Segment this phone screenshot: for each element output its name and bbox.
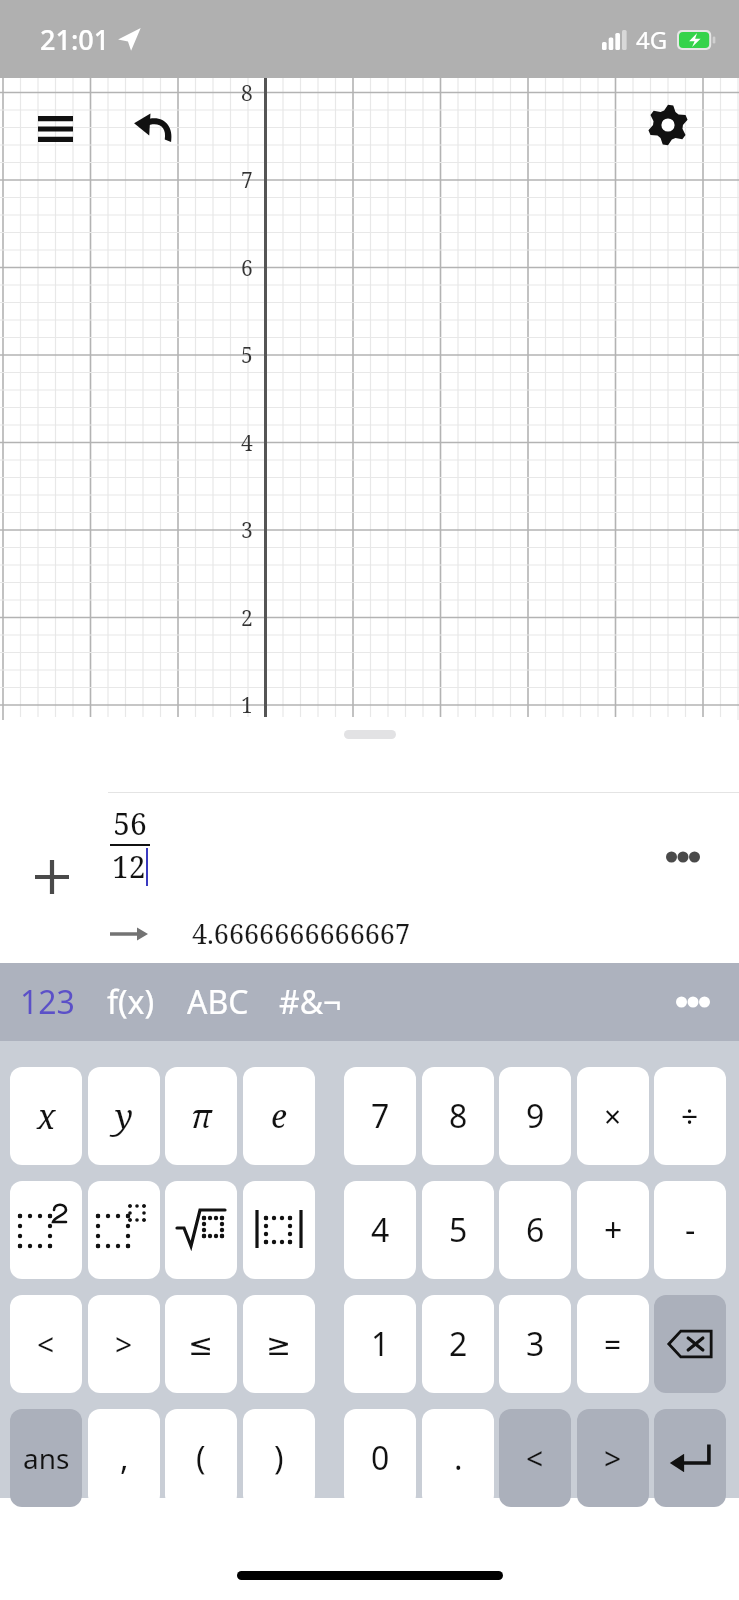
button[interactable]: 1	[344, 1295, 416, 1393]
staticText: 4G	[636, 23, 668, 56]
staticText: 3	[241, 516, 253, 545]
staticText: x	[37, 1093, 56, 1139]
staticText: ,	[120, 1436, 129, 1480]
button[interactable]: <	[10, 1295, 82, 1393]
button[interactable]: Menu	[24, 98, 86, 160]
button[interactable]: Square root	[165, 1181, 237, 1279]
button[interactable]: Settings	[637, 94, 699, 156]
staticText: 8	[449, 1094, 468, 1138]
staticText: 5	[241, 341, 253, 370]
staticText: <	[526, 1438, 544, 1479]
staticText: (	[196, 1436, 206, 1480]
button[interactable]: >	[88, 1295, 160, 1393]
staticText: .	[454, 1436, 463, 1480]
button[interactable]: ABC	[181, 963, 255, 1041]
staticText: 4.6666666666667	[192, 915, 411, 952]
button[interactable]: ×	[577, 1067, 649, 1165]
staticText: 6	[241, 254, 253, 283]
button[interactable]: ≤	[165, 1295, 237, 1393]
button[interactable]: =	[577, 1295, 649, 1393]
staticText: <	[37, 1324, 55, 1365]
button[interactable]: Power	[88, 1181, 160, 1279]
staticText: ×	[604, 1096, 622, 1137]
button[interactable]: More keyboard options	[665, 974, 721, 1030]
staticText: 4	[371, 1208, 390, 1252]
staticText: ≤	[188, 1327, 214, 1362]
button[interactable]: Expression options	[655, 829, 711, 885]
staticText: )	[274, 1436, 284, 1480]
button[interactable]: 9	[499, 1067, 571, 1165]
button[interactable]: 5	[422, 1181, 494, 1279]
button[interactable]: Square	[10, 1181, 82, 1279]
staticText: 7	[371, 1094, 390, 1138]
staticText: 6	[526, 1208, 545, 1252]
staticText: 5	[449, 1208, 468, 1252]
button[interactable]: π	[165, 1067, 237, 1165]
button[interactable]: 2	[422, 1295, 494, 1393]
staticText: 9	[526, 1094, 545, 1138]
staticText: #&¬	[279, 980, 342, 1024]
staticText: y	[115, 1093, 133, 1139]
button[interactable]: Add expression	[22, 847, 82, 907]
button[interactable]: ≥	[243, 1295, 315, 1393]
button[interactable]: 7	[344, 1067, 416, 1165]
staticText: 123	[20, 980, 75, 1024]
button[interactable]: 6	[499, 1181, 571, 1279]
button[interactable]: 4	[344, 1181, 416, 1279]
staticText: >	[115, 1324, 133, 1365]
button[interactable]: ans	[10, 1409, 82, 1507]
staticText: 3	[526, 1322, 545, 1366]
staticText: 4	[241, 429, 253, 458]
staticText: π	[191, 1094, 212, 1138]
staticText: 7	[241, 166, 253, 195]
staticText: ÷	[681, 1096, 699, 1137]
staticText: =	[604, 1324, 622, 1365]
staticText: f(x)	[107, 980, 155, 1024]
staticText: 0	[371, 1436, 390, 1480]
button[interactable]: f(x)	[101, 963, 161, 1041]
button[interactable]: e	[243, 1067, 315, 1165]
button[interactable]: 3	[499, 1295, 571, 1393]
button[interactable]: ÷	[654, 1067, 726, 1165]
button[interactable]: 123	[14, 963, 81, 1041]
button[interactable]: 8	[422, 1067, 494, 1165]
button[interactable]: Enter	[654, 1409, 726, 1507]
button[interactable]: 56	[110, 803, 150, 887]
button[interactable]: +	[577, 1181, 649, 1279]
button[interactable]: y	[88, 1067, 160, 1165]
button[interactable]: #&¬	[273, 963, 348, 1041]
button[interactable]: )	[243, 1409, 315, 1507]
staticText: -	[685, 1208, 696, 1252]
button[interactable]: Backspace	[654, 1295, 726, 1393]
staticText: 56	[113, 803, 147, 844]
button[interactable]: ,	[88, 1409, 160, 1507]
staticText: 2	[241, 604, 253, 633]
staticText: 21:01	[40, 21, 110, 58]
staticText: 8	[241, 79, 253, 108]
button[interactable]: x	[10, 1067, 82, 1165]
staticText: 12	[112, 846, 146, 887]
button[interactable]: (	[165, 1409, 237, 1507]
staticText: e	[271, 1094, 287, 1138]
button[interactable]: >	[577, 1409, 649, 1507]
staticText: ≥	[266, 1327, 292, 1362]
staticText: ABC	[187, 980, 249, 1024]
staticText: 1	[241, 691, 253, 720]
staticText: 2	[449, 1322, 468, 1366]
button[interactable]: 0	[344, 1409, 416, 1507]
button[interactable]: Absolute value	[243, 1181, 315, 1279]
button[interactable]: Undo	[122, 96, 184, 158]
staticText: ans	[23, 1439, 70, 1477]
button[interactable]: <	[499, 1409, 571, 1507]
staticText: +	[604, 1208, 623, 1252]
button[interactable]: -	[654, 1181, 726, 1279]
staticText: 1	[371, 1322, 390, 1366]
button[interactable]: .	[422, 1409, 494, 1507]
staticText: >	[604, 1438, 622, 1479]
